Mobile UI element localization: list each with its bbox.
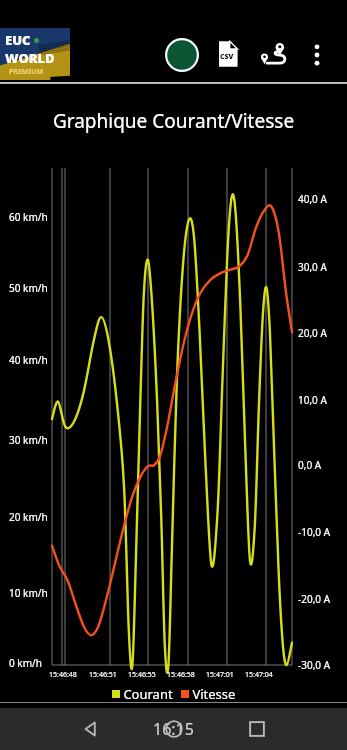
staticText: -30,0 A xyxy=(298,658,331,672)
staticText: CSV xyxy=(220,52,234,62)
staticText: Vitesse xyxy=(189,685,236,703)
staticText: 60 km/h xyxy=(9,210,48,224)
staticText: 0 km/h xyxy=(9,656,42,670)
staticText: PREMIUM xyxy=(9,67,44,77)
staticText: 20 km/h xyxy=(9,510,48,524)
staticText: -10,0 A xyxy=(298,525,331,539)
staticText: 40,0 A xyxy=(298,192,327,206)
button[interactable]: Route xyxy=(256,38,290,72)
button[interactable]: Home xyxy=(161,716,187,742)
staticText: EUC xyxy=(5,31,31,49)
staticText: Courant xyxy=(120,685,173,703)
staticText: 40 km/h xyxy=(9,353,48,367)
staticText: 0,0 A xyxy=(298,458,322,472)
button[interactable]: Recent apps xyxy=(242,714,272,744)
button[interactable]: Back xyxy=(75,714,105,744)
button[interactable]: Recording status xyxy=(165,38,199,72)
button[interactable]: Courant xyxy=(112,685,173,703)
staticText: 15:46:58 xyxy=(167,670,195,680)
button[interactable]: More options xyxy=(300,38,334,72)
staticText: 30,0 A xyxy=(298,260,327,274)
staticText: Graphique Courant/Vitesse xyxy=(0,108,347,134)
staticText: 16:15 xyxy=(153,718,194,740)
button[interactable]: Export CSV xyxy=(212,38,244,70)
staticText: 30 km/h xyxy=(9,433,48,447)
staticText: 20,0 A xyxy=(298,326,327,340)
button[interactable]: EUC World Premium xyxy=(0,28,70,80)
staticText: 50 km/h xyxy=(9,281,48,295)
staticText: 15:46:55 xyxy=(128,670,156,680)
staticText: 15:47:04 xyxy=(245,670,273,680)
button[interactable]: Vitesse xyxy=(181,685,236,703)
staticText: -20,0 A xyxy=(298,592,331,606)
staticText: 10,0 A xyxy=(298,393,327,407)
staticText: 15:46:48 xyxy=(49,670,77,680)
staticText: 10 km/h xyxy=(9,586,48,600)
staticText: 15:46:51 xyxy=(89,670,117,680)
staticText: 15:47:01 xyxy=(206,670,234,680)
staticText: WORLD xyxy=(5,49,55,67)
